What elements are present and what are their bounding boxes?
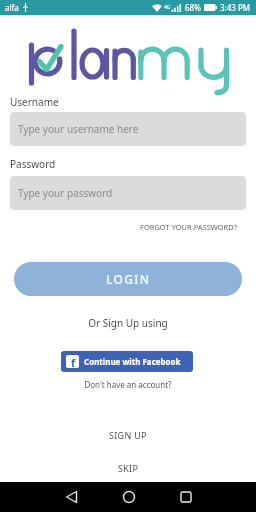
button[interactable] [176, 487, 196, 507]
button[interactable]: SIGN UP [109, 429, 147, 441]
staticText: alfa [5, 2, 19, 13]
staticText: 3:43 PM [220, 2, 251, 13]
staticText: Type your password [18, 186, 113, 200]
staticText: Continue with Facebook [84, 356, 181, 367]
button[interactable]: FORGOT YOUR PASSWORD? [140, 222, 238, 232]
staticText: Username [10, 95, 59, 109]
staticText: Or Sign Up using [0, 316, 256, 330]
staticText: 4G [164, 4, 171, 11]
staticText: Password [10, 157, 56, 171]
button[interactable] [119, 487, 139, 507]
button[interactable]: SKIP [118, 462, 139, 474]
button[interactable]: f [61, 351, 193, 372]
staticText: f [71, 355, 76, 368]
button[interactable]: Type your username here [10, 112, 246, 146]
staticText: LOGIN [106, 271, 151, 287]
staticText: Don't have an account? [0, 379, 256, 390]
staticText: 68% [185, 2, 201, 13]
button[interactable]: LOGIN [14, 262, 242, 296]
button[interactable] [62, 487, 82, 507]
staticText: Type your username here [18, 122, 139, 136]
button[interactable]: Type your password [10, 176, 246, 210]
